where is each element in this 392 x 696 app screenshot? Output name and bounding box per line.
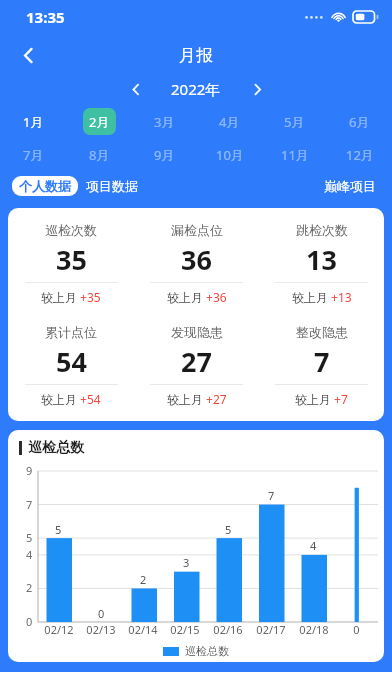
staticText: 2 — [140, 572, 147, 587]
staticText: 02/15 — [170, 622, 200, 637]
staticText: 0 — [353, 622, 360, 637]
staticText: 5月 — [284, 113, 305, 131]
staticText: 8月 — [89, 146, 110, 164]
staticText: 整改隐患 — [296, 324, 348, 340]
staticText: 02/12 — [44, 622, 74, 637]
staticText: 个人数据 — [19, 178, 71, 194]
staticText: 02/16 — [213, 622, 243, 637]
staticText: 较上月 +7 — [295, 391, 348, 407]
staticText: 5 — [225, 522, 232, 537]
button[interactable]: 累计点位 — [8, 314, 134, 416]
staticText: 较上月 +27 — [167, 391, 227, 407]
button[interactable]: 返回 — [8, 35, 48, 75]
button[interactable]: 巡检次数 — [8, 213, 134, 314]
staticText: 7 — [268, 488, 275, 503]
staticText: 36 — [181, 241, 212, 278]
staticText: 发现隐患 — [171, 324, 223, 340]
staticText: 54 — [56, 343, 87, 380]
button[interactable]: 漏检点位 — [134, 213, 259, 314]
staticText: 5 — [26, 530, 33, 545]
staticText: 02/18 — [299, 622, 329, 637]
staticText: 27 — [181, 343, 212, 380]
staticText: 9 — [26, 463, 33, 478]
button[interactable]: 5月 — [262, 105, 327, 138]
staticText: 跳检次数 — [296, 222, 348, 238]
button[interactable]: 6月 — [327, 105, 392, 138]
button[interactable]: 整改隐患 — [259, 314, 384, 416]
staticText: 7月 — [23, 146, 44, 164]
button[interactable]: 8月 — [66, 138, 132, 171]
button[interactable]: 12月 — [327, 138, 392, 171]
staticText: 12月 — [346, 146, 374, 164]
staticText: 11月 — [281, 146, 309, 164]
staticText: 0 — [98, 606, 105, 621]
button[interactable]: 2月 — [66, 105, 132, 138]
staticText: 漏检点位 — [171, 222, 223, 238]
staticText: 月报 — [179, 45, 213, 66]
staticText: 4 — [310, 538, 317, 553]
staticText: 0 — [26, 614, 33, 629]
button[interactable]: 跳检次数 — [259, 213, 384, 314]
staticText: 巡检次数 — [45, 222, 97, 238]
staticText: 4 — [26, 547, 33, 562]
staticText: 02/14 — [128, 622, 158, 637]
staticText: 项目数据 — [86, 178, 138, 194]
staticText: 较上月 +13 — [292, 289, 352, 305]
staticText: 35 — [56, 241, 87, 278]
button[interactable]: 项目数据 — [78, 174, 146, 198]
staticText: 13 — [306, 241, 337, 278]
staticText: 3月 — [154, 113, 175, 131]
staticText: 累计点位 — [45, 324, 97, 340]
staticText: 巡检总数 — [185, 644, 229, 658]
button[interactable]: 3月 — [132, 105, 197, 138]
staticText: 5 — [55, 522, 62, 537]
staticText: 3 — [183, 555, 190, 570]
staticText: 巡检总数 — [28, 439, 84, 457]
button[interactable]: 个人数据 — [12, 176, 78, 196]
staticText: 02/17 — [256, 622, 286, 637]
staticText: 较上月 +36 — [167, 289, 227, 305]
button[interactable]: 7月 — [0, 138, 66, 171]
button[interactable]: 发现隐患 — [134, 314, 259, 416]
button[interactable]: 巅峰项目 — [320, 174, 380, 198]
staticText: 较上月 +35 — [41, 289, 101, 305]
staticText: 较上月 +54 — [41, 391, 101, 407]
button[interactable]: 1月 — [0, 105, 66, 138]
staticText: 巅峰项目 — [324, 178, 376, 194]
staticText: 7 — [26, 497, 33, 512]
staticText: 6月 — [349, 113, 370, 131]
staticText: 4月 — [219, 113, 240, 131]
staticText: 10月 — [216, 146, 244, 164]
button[interactable]: 9月 — [132, 138, 197, 171]
staticText: 1月 — [23, 113, 44, 131]
button[interactable]: 10月 — [197, 138, 262, 171]
button[interactable]: 上一年 — [119, 76, 151, 102]
staticText: 9月 — [154, 146, 175, 164]
staticText: 2 — [26, 580, 33, 595]
button[interactable]: 4月 — [197, 105, 262, 138]
staticText: 13:35 — [26, 7, 65, 27]
button[interactable]: 下一年 — [241, 76, 273, 102]
button[interactable]: 11月 — [262, 138, 327, 171]
staticText: 7 — [314, 343, 330, 380]
staticText: 2月 — [89, 113, 110, 131]
staticText: 02/13 — [86, 622, 116, 637]
staticText: 2022年 — [171, 79, 221, 99]
